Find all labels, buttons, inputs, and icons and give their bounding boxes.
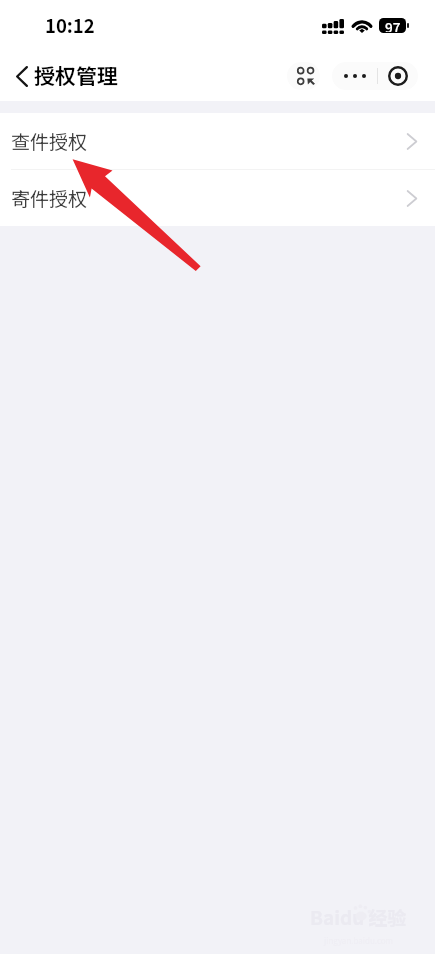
button[interactable]: Close mini program	[378, 62, 418, 90]
staticText: Baidu 经验	[310, 903, 407, 931]
staticText: 授权管理	[34, 60, 118, 90]
button[interactable]: 寄件授权	[0, 170, 435, 226]
button[interactable]: Mini program list	[287, 62, 320, 90]
staticText: 查件授权	[11, 127, 88, 155]
staticText: 97	[385, 17, 401, 32]
button[interactable]: Back	[0, 54, 44, 98]
staticText: 10:12	[45, 12, 95, 39]
button[interactable]: More options	[332, 62, 377, 90]
staticText: 寄件授权	[11, 184, 88, 212]
button[interactable]: 查件授权	[0, 113, 435, 169]
